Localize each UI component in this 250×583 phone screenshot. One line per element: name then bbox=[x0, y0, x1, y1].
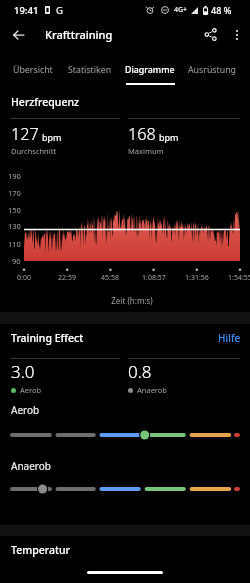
staticText: Zeit (h:m:s) bbox=[24, 295, 240, 306]
staticText: 168 bbox=[128, 123, 156, 145]
staticText: 0.8 bbox=[128, 360, 152, 383]
staticText: 0:00 bbox=[17, 273, 31, 283]
staticText: 22:59 bbox=[58, 273, 76, 283]
staticText: Training Effect bbox=[11, 331, 84, 345]
staticText: 48 % bbox=[211, 4, 232, 16]
staticText: G bbox=[56, 4, 63, 17]
staticText: 1:31:56 bbox=[185, 273, 209, 283]
staticText: bpm bbox=[159, 131, 179, 143]
staticText: bpm bbox=[42, 131, 62, 143]
staticText: Maximum bbox=[128, 146, 164, 156]
staticText: Anaerob bbox=[11, 459, 51, 473]
staticText: Durchschnitt bbox=[11, 146, 57, 156]
staticText: Statistiken bbox=[68, 64, 112, 76]
staticText: 1:54:55 bbox=[228, 273, 250, 283]
staticText: 110 bbox=[8, 239, 21, 249]
button[interactable]: Statistiken bbox=[62, 57, 118, 85]
staticText: Temperatur bbox=[11, 543, 70, 557]
staticText: 4G+ bbox=[174, 5, 188, 15]
staticText: Hilfe bbox=[218, 331, 241, 345]
staticText: Aerob bbox=[20, 385, 42, 395]
staticText: 90 bbox=[12, 256, 21, 266]
button[interactable]: Share bbox=[196, 22, 224, 47]
staticText: Übersicht bbox=[13, 64, 53, 76]
staticText: Anaerob bbox=[137, 385, 167, 395]
staticText: Aerob bbox=[11, 403, 40, 417]
staticText: 127 bbox=[11, 123, 39, 145]
staticText: Krafttraining bbox=[45, 27, 113, 42]
button[interactable]: Ausrüstung bbox=[182, 57, 243, 85]
button[interactable]: Hilfe bbox=[214, 327, 245, 349]
button[interactable]: Übersicht bbox=[4, 57, 62, 85]
staticText: 19:41 bbox=[14, 4, 39, 17]
button[interactable]: Diagramme bbox=[118, 57, 182, 85]
button[interactable]: More options bbox=[224, 22, 250, 47]
staticText: 130 bbox=[8, 221, 21, 231]
staticText: 170 bbox=[8, 188, 21, 198]
staticText: 3.0 bbox=[11, 360, 35, 383]
staticText: 150 bbox=[8, 205, 21, 215]
staticText: 190 bbox=[8, 171, 21, 181]
staticText: Herzfrequenz bbox=[11, 95, 80, 109]
button[interactable]: Back bbox=[0, 22, 36, 47]
staticText: Ausrüstung bbox=[188, 64, 237, 76]
staticText: 45:58 bbox=[101, 273, 119, 283]
staticText: Diagramme bbox=[125, 64, 175, 76]
staticText: 1:08:57 bbox=[142, 273, 166, 283]
